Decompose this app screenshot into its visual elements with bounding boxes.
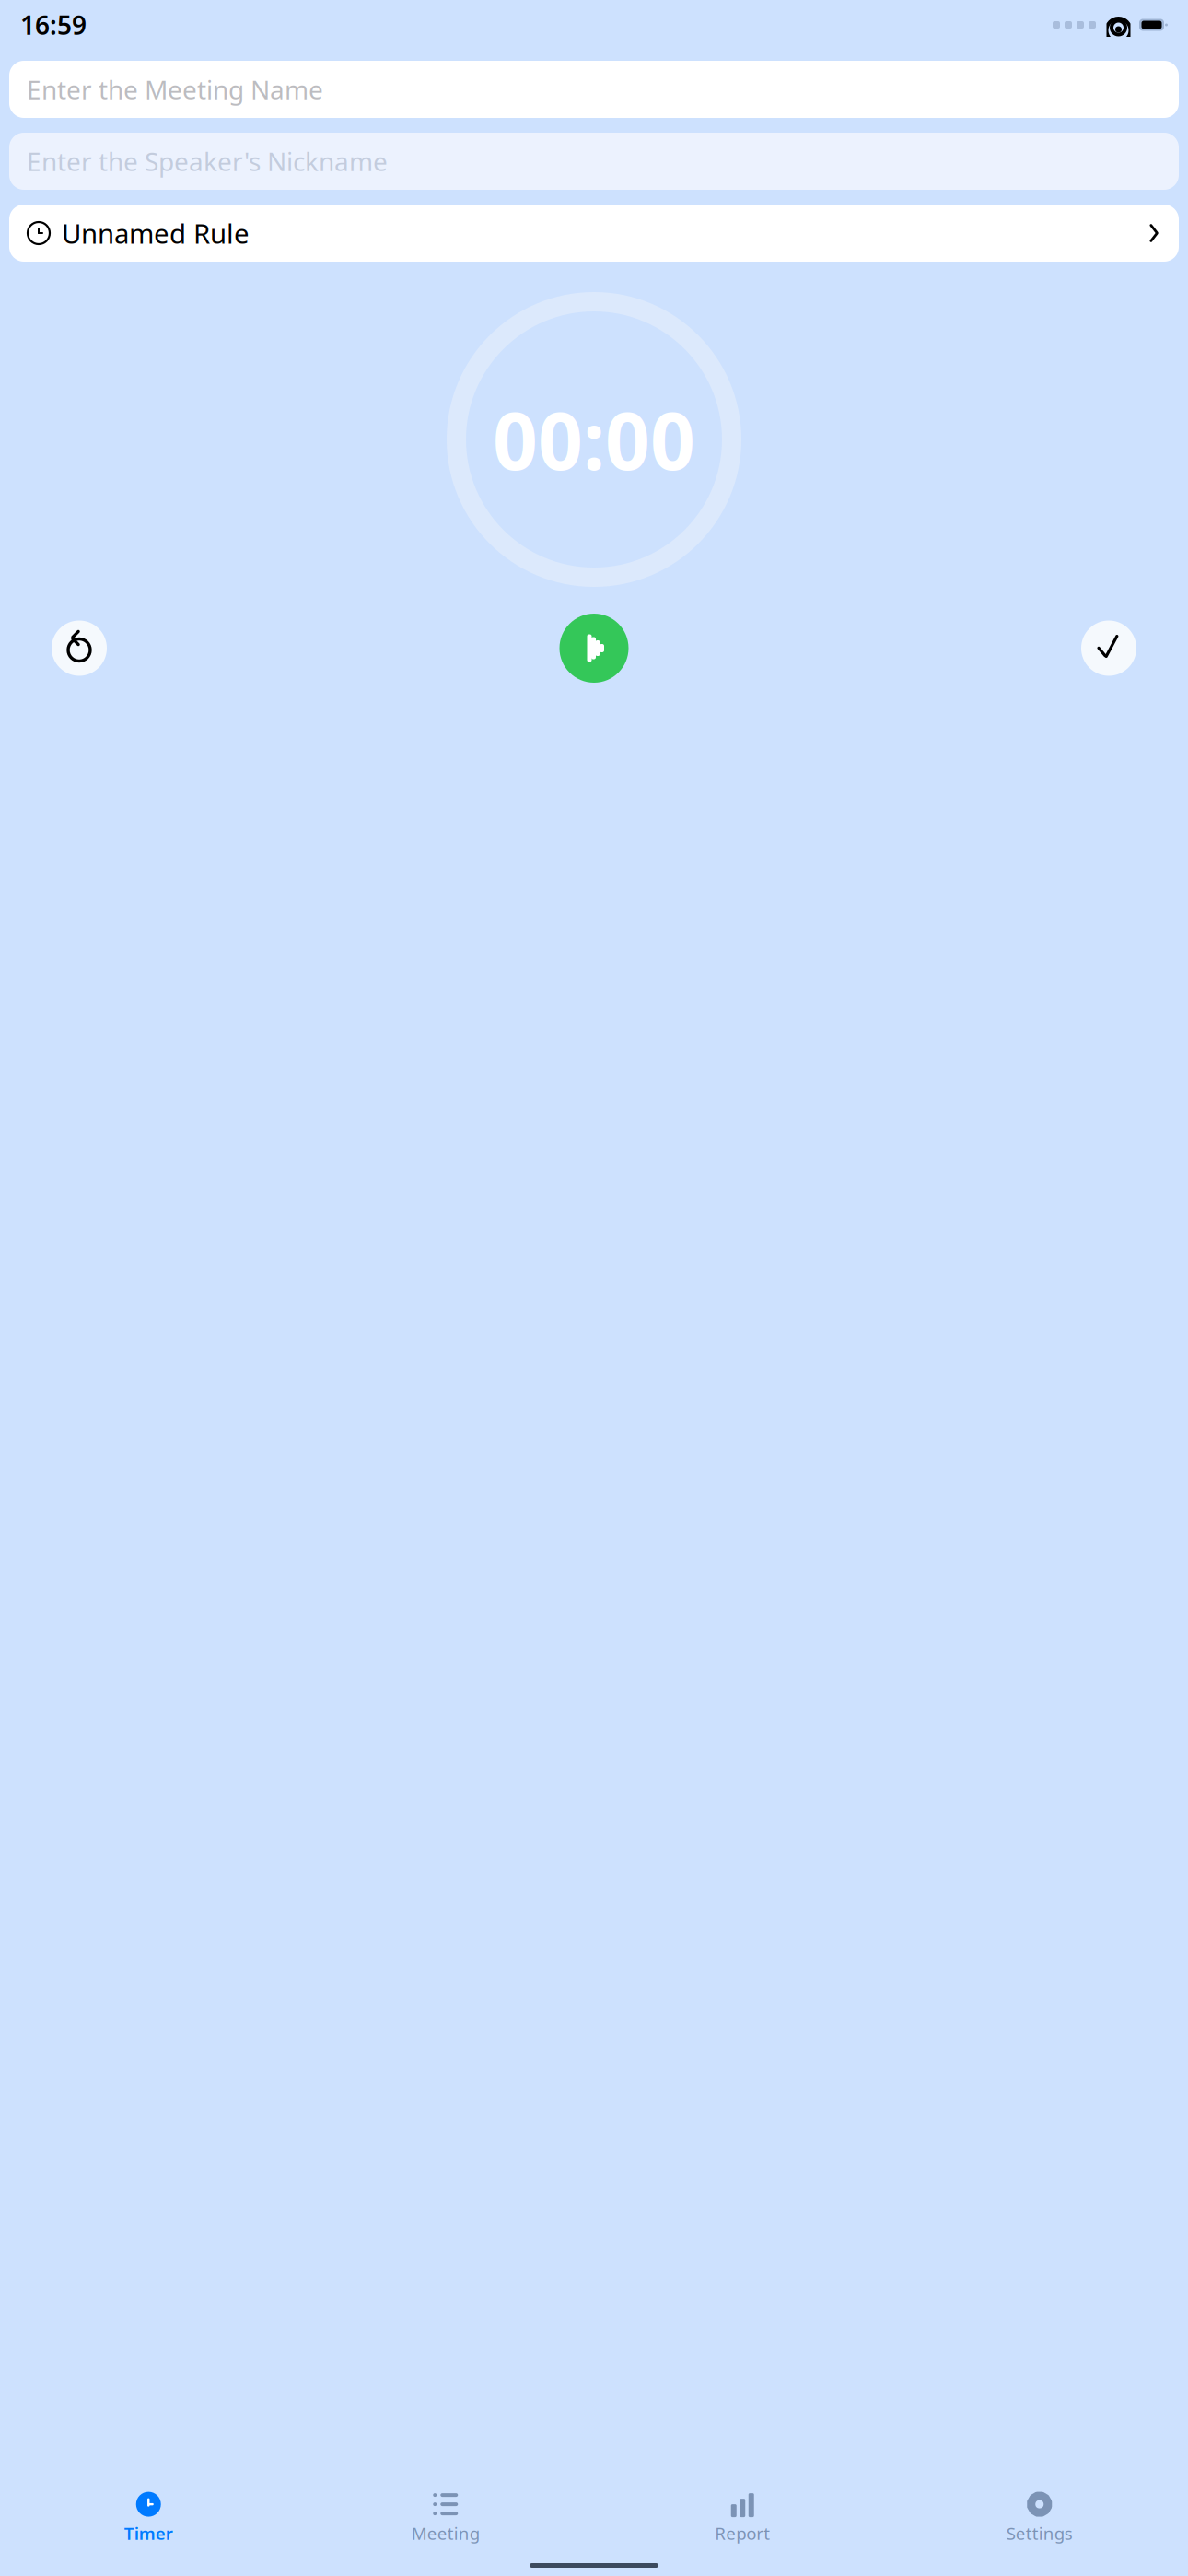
button[interactable]: Finish <box>1081 621 1136 676</box>
button[interactable]: Unnamed Rule <box>9 205 1179 262</box>
staticText: Report <box>715 2522 770 2545</box>
staticText: Settings <box>1006 2522 1073 2545</box>
staticText: Timer <box>124 2522 173 2545</box>
button[interactable]: Meeting <box>297 2486 594 2550</box>
button[interactable]: Reset <box>52 621 107 676</box>
staticText: Enter the Meeting Name <box>27 72 323 107</box>
button[interactable]: Settings <box>891 2486 1188 2550</box>
button[interactable]: Timer <box>0 2486 297 2550</box>
staticText: 16:59 <box>20 8 87 42</box>
button[interactable]: Start <box>559 614 629 683</box>
button[interactable]: Enter the Speaker's Nickname <box>9 133 1179 190</box>
staticText: Unnamed Rule <box>62 215 250 251</box>
button[interactable]: Report <box>594 2486 891 2550</box>
button[interactable]: Enter the Meeting Name <box>9 61 1179 118</box>
staticText: 00:00 <box>493 387 695 492</box>
staticText: Enter the Speaker's Nickname <box>27 144 388 178</box>
staticText: Meeting <box>411 2522 480 2545</box>
